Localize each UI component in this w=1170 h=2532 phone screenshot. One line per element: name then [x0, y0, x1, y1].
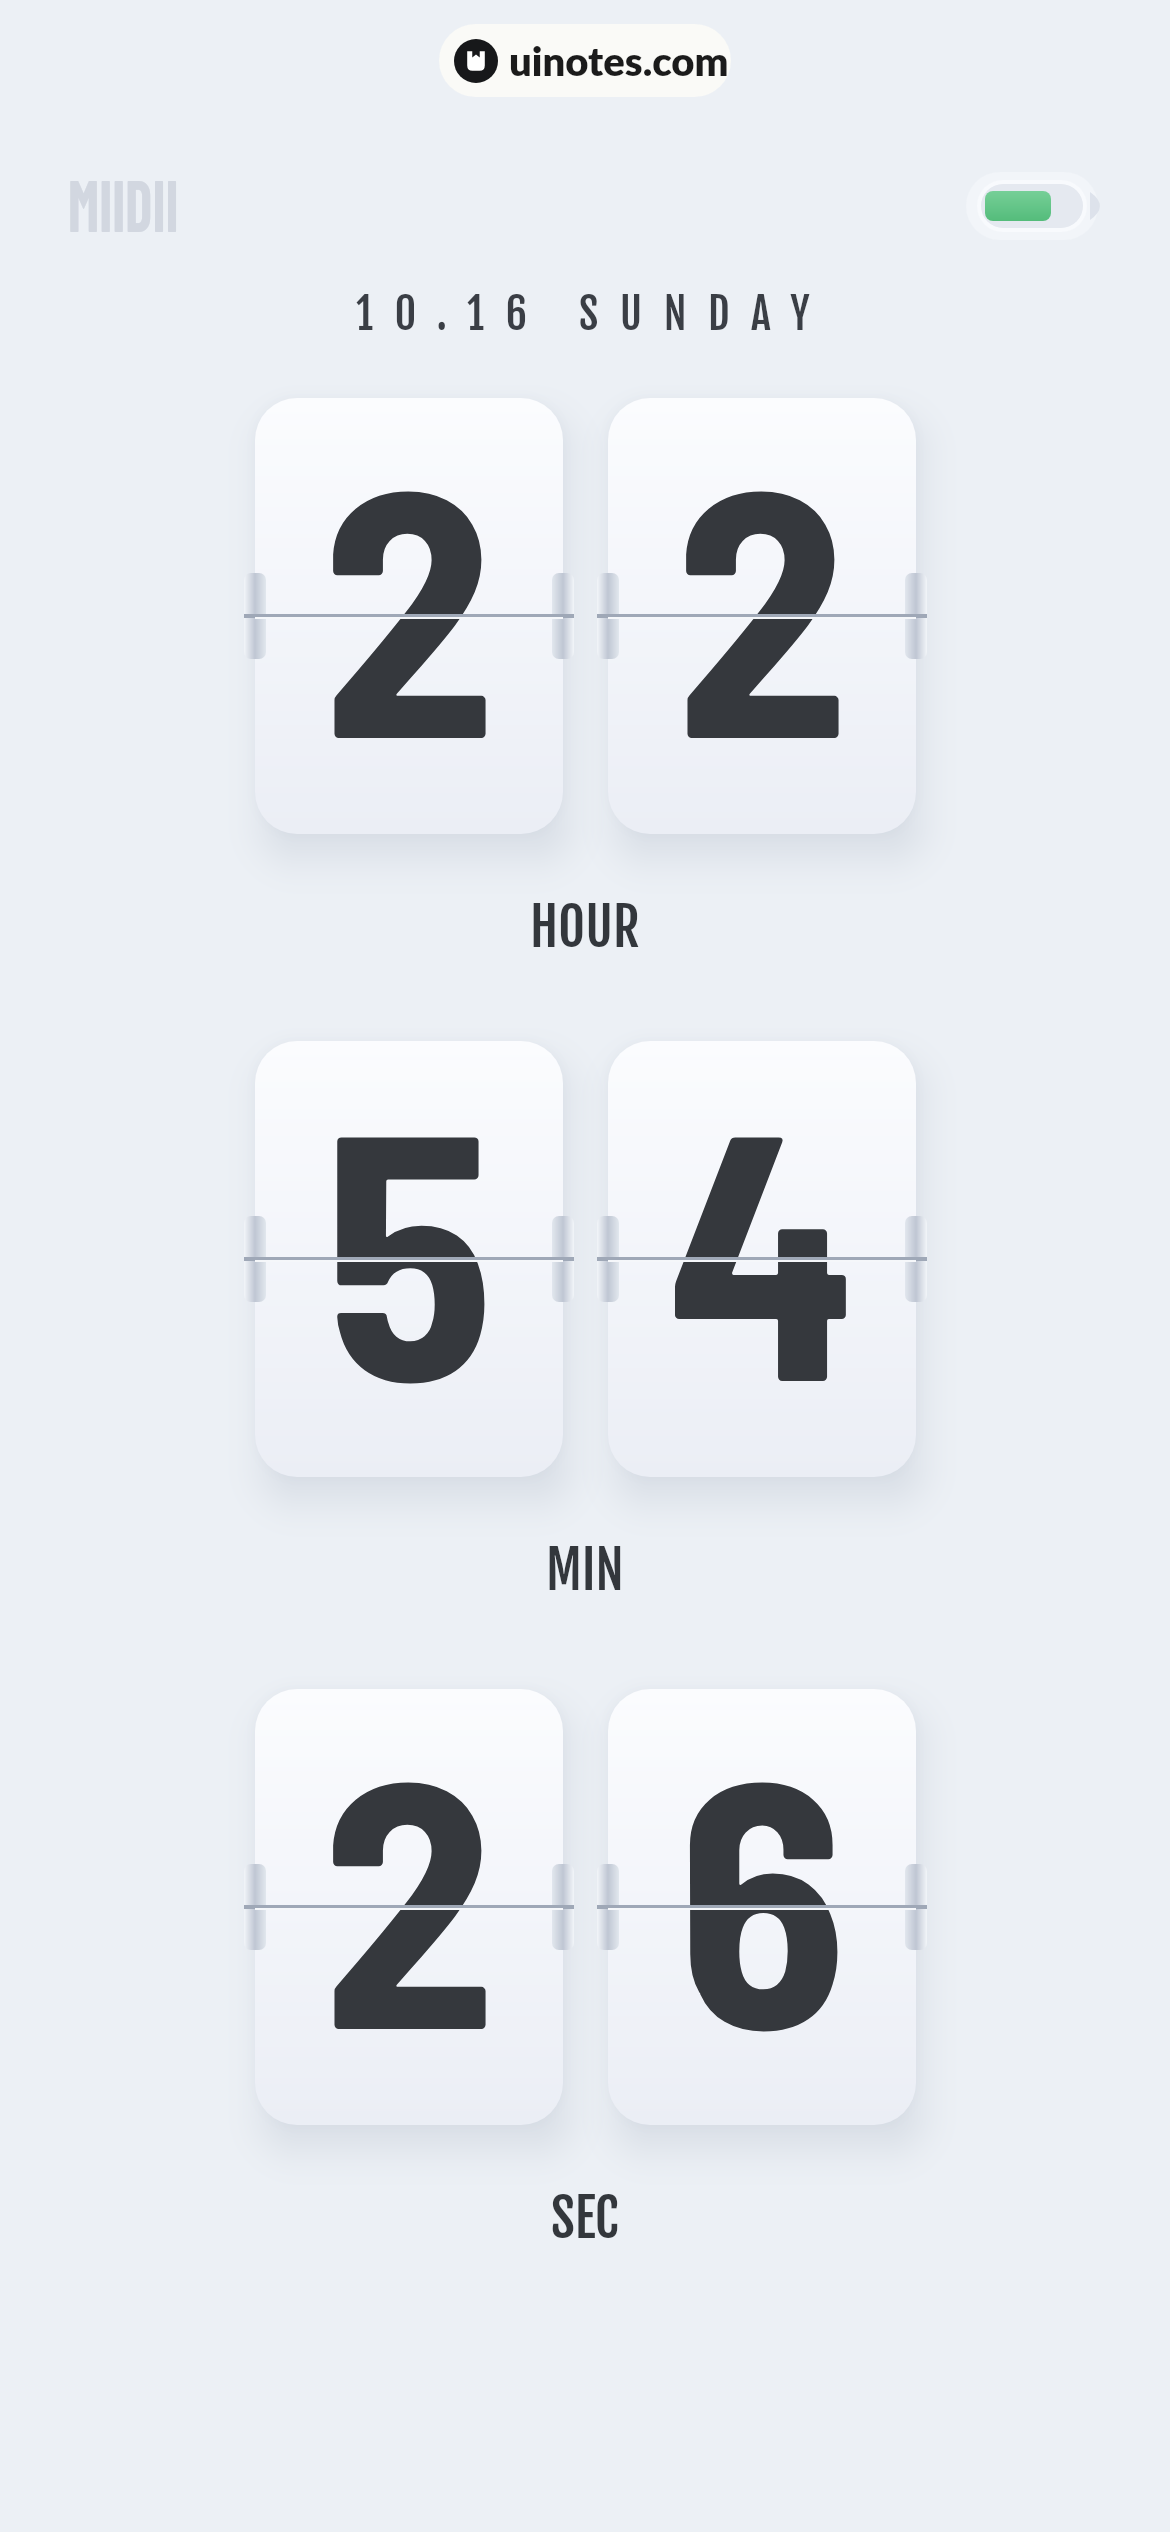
button[interactable] [966, 172, 1098, 240]
staticText: 5 [324, 1041, 494, 1451]
staticText: MIIDII [68, 160, 179, 246]
staticText: 6 [677, 1689, 847, 2099]
button[interactable]: 2 [255, 1689, 563, 2125]
staticText: uinotes.com [509, 37, 729, 85]
staticText: 10.16 SUNDAY [356, 288, 832, 340]
staticText: MIN [546, 1538, 624, 1600]
button[interactable]: 4 [608, 1041, 916, 1477]
staticText: HOUR [530, 895, 640, 957]
button[interactable]: 6 [608, 1689, 916, 2125]
staticText: 2 [675, 398, 849, 808]
staticText: 4 [667, 1041, 857, 1451]
button[interactable]: 5 [255, 1041, 563, 1477]
button[interactable]: 2 [255, 398, 563, 834]
button[interactable]: 2 [608, 398, 916, 834]
staticText: 2 [322, 1689, 496, 2099]
staticText: SEC [551, 2186, 619, 2248]
staticText: 2 [322, 398, 496, 808]
button[interactable]: uinotes.com [439, 24, 731, 97]
